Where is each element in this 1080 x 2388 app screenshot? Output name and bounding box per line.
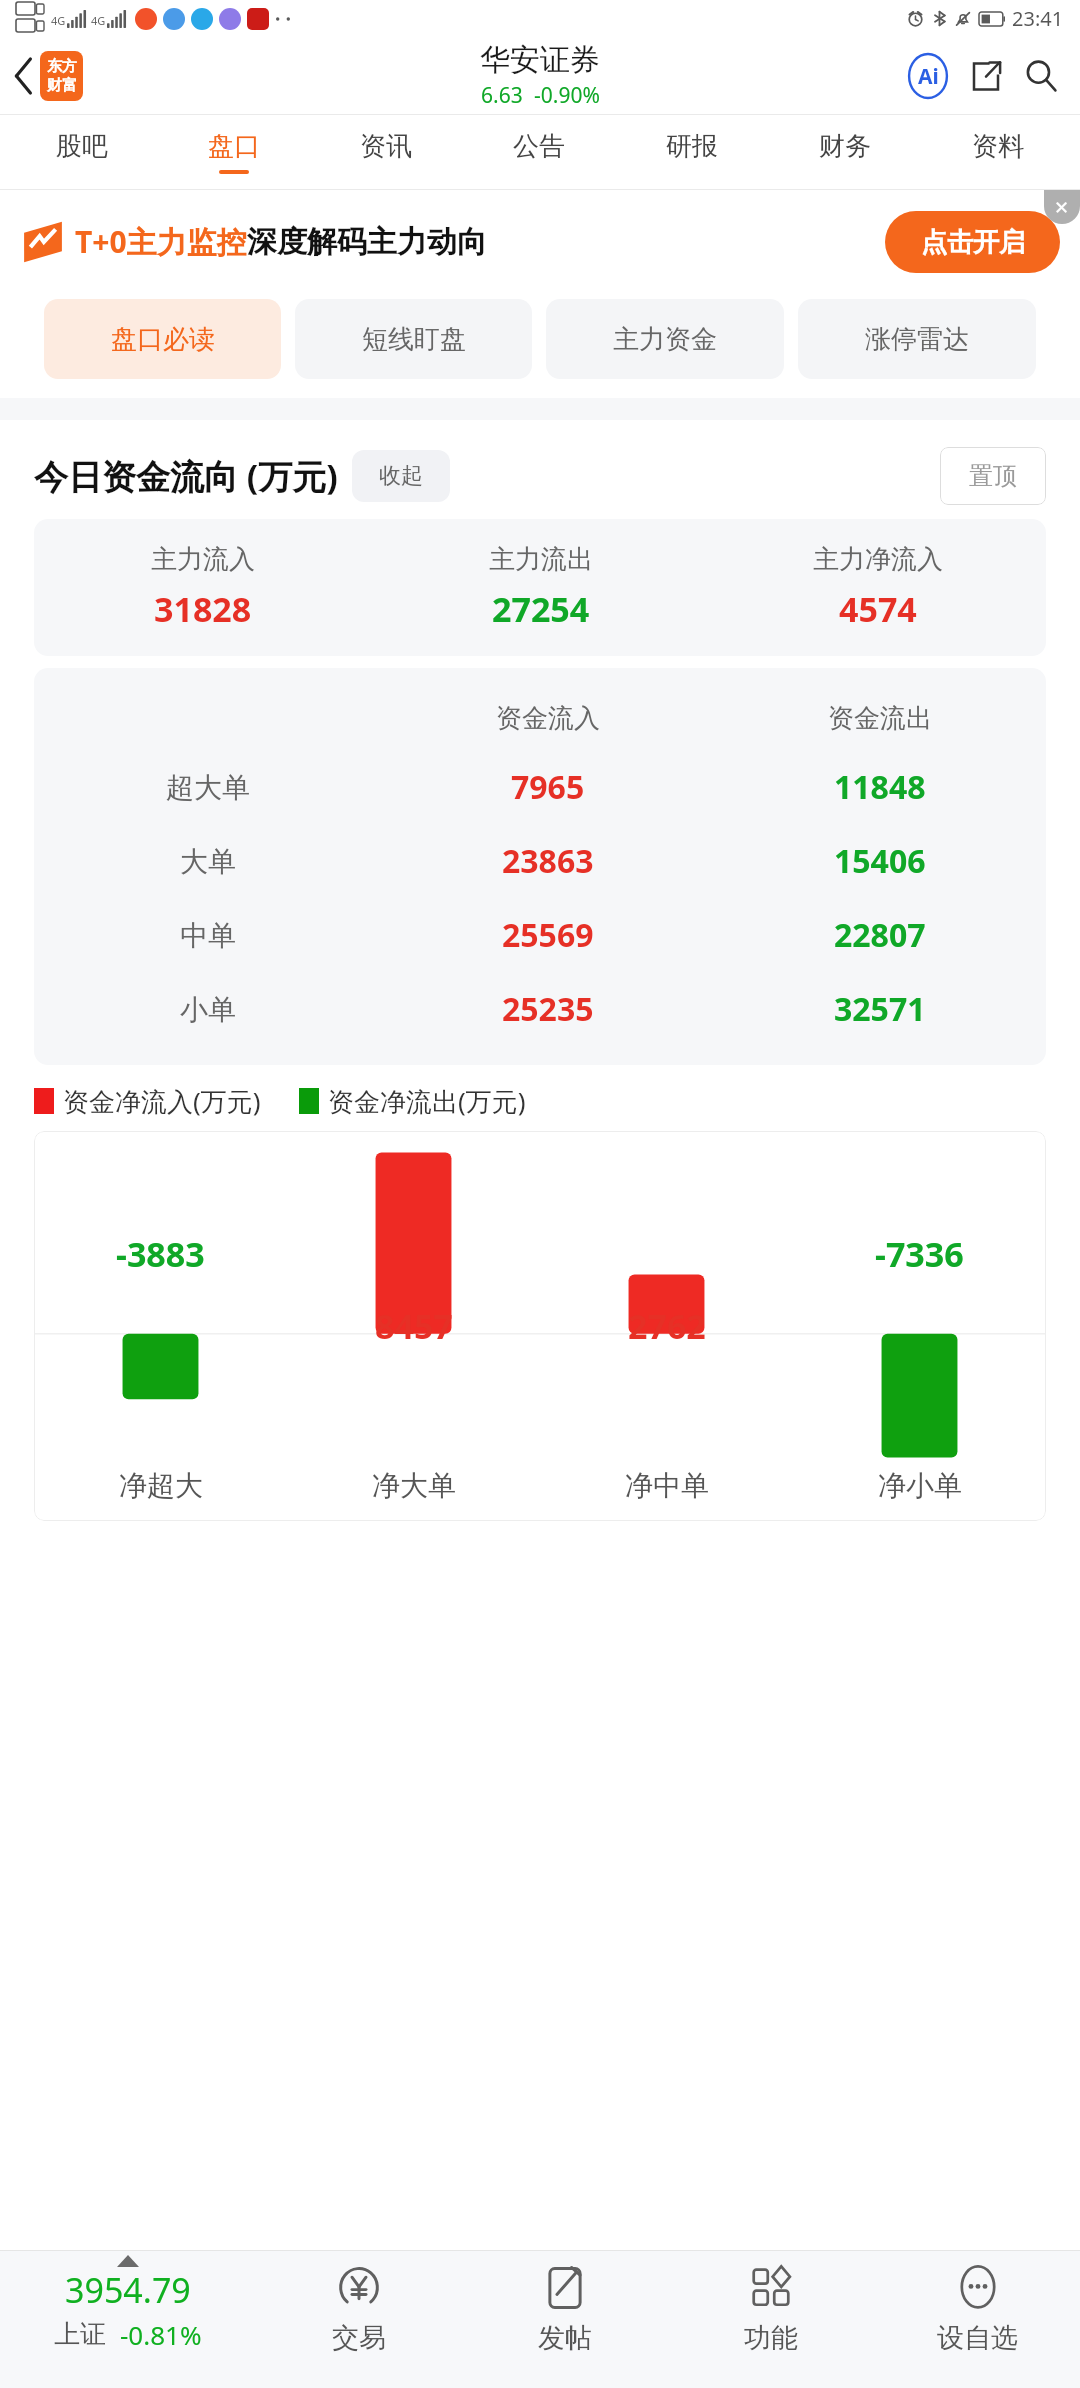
staticText: 财务	[819, 130, 871, 163]
button[interactable]: 财务	[768, 115, 921, 189]
staticText: ✕	[1054, 197, 1070, 218]
staticText: 东方	[47, 57, 77, 76]
staticText: 4G	[91, 13, 106, 28]
staticText: 25235	[502, 987, 594, 1031]
button[interactable]: 功能	[668, 2251, 874, 2388]
staticText: -3883	[116, 1231, 205, 1277]
staticText: 32571	[834, 987, 926, 1031]
staticText: 深度解码主力动向	[247, 223, 487, 261]
button[interactable]: AI assistant	[906, 54, 950, 98]
button[interactable]: 资讯	[310, 115, 462, 189]
button[interactable]: Search	[1020, 55, 1062, 97]
staticText: 资金净流出(万元)	[328, 1083, 526, 1119]
staticText: 公告	[513, 130, 565, 163]
staticText: -0.81%	[120, 2317, 202, 2352]
staticText: 盘口	[208, 130, 260, 163]
staticText: 发帖	[538, 2321, 592, 2355]
button[interactable]: 收起	[352, 450, 450, 502]
staticText: 31828	[154, 586, 252, 632]
staticText: 华安证券	[480, 41, 600, 79]
staticText: 中单	[180, 918, 236, 953]
button[interactable]: 短线盯盘	[295, 299, 532, 379]
staticText: 27254	[492, 586, 590, 632]
staticText: 盘口必读	[111, 323, 215, 356]
button[interactable]: 东方	[40, 51, 83, 101]
staticText: 资讯	[360, 130, 412, 163]
staticText: 上证	[54, 2318, 106, 2351]
staticText: 收起	[379, 462, 423, 490]
staticText: 功能	[744, 2321, 798, 2355]
button[interactable]: 主力资金	[546, 299, 784, 379]
staticText: 主力净流入	[813, 543, 943, 576]
staticText: 涨停雷达	[865, 323, 969, 356]
button[interactable]: Back	[0, 49, 40, 103]
staticText: 净大单	[372, 1468, 456, 1503]
staticText: 6.63	[481, 81, 523, 110]
button[interactable]: 资料	[921, 115, 1074, 189]
staticText: -0.90%	[534, 81, 600, 110]
staticText: 净中单	[625, 1468, 709, 1503]
staticText: 23863	[502, 839, 594, 883]
staticText: 今日资金流向 (万元)	[34, 453, 338, 499]
staticText: 财富	[47, 76, 77, 95]
staticText: 研报	[666, 130, 718, 163]
button[interactable]: 发帖	[462, 2251, 668, 2388]
button[interactable]: 股吧	[6, 115, 158, 189]
button[interactable]: 点击开启	[885, 211, 1060, 273]
staticText: 4G	[51, 13, 66, 28]
button[interactable]: 盘口	[158, 115, 310, 189]
staticText: 资金净流入(万元)	[63, 1083, 261, 1119]
staticText: 4574	[839, 586, 917, 632]
staticText: 净小单	[878, 1468, 962, 1503]
staticText: 主力流出	[489, 543, 593, 576]
staticText: 短线盯盘	[362, 323, 466, 356]
staticText: 资金流入	[496, 702, 600, 735]
staticText: 点击开启	[921, 226, 1025, 259]
staticText: 主力资金	[613, 323, 717, 356]
button[interactable]: 交易	[256, 2251, 462, 2388]
staticText: 8457	[375, 1303, 453, 1349]
staticText: 交易	[332, 2321, 386, 2355]
button[interactable]: 设自选	[874, 2251, 1080, 2388]
staticText: 净超大	[119, 1468, 203, 1503]
button[interactable]: 公告	[462, 115, 615, 189]
button[interactable]: 涨停雷达	[798, 299, 1036, 379]
button[interactable]: 盘口必读	[44, 299, 281, 379]
staticText: 超大单	[166, 770, 250, 805]
button[interactable]: 3954.79	[0, 2251, 256, 2388]
button[interactable]: Close ad	[1044, 190, 1080, 224]
staticText: 2762	[628, 1303, 706, 1349]
button[interactable]: 研报	[615, 115, 768, 189]
button[interactable]: Share	[966, 56, 1006, 96]
staticText: 大单	[180, 844, 236, 879]
staticText: 股吧	[56, 130, 108, 163]
staticText: Ai	[918, 62, 939, 91]
staticText: 置顶	[969, 461, 1017, 491]
staticText: 主力流入	[151, 543, 255, 576]
button[interactable]: 置顶	[940, 447, 1046, 505]
staticText: 25569	[502, 913, 594, 957]
staticText: 小单	[180, 992, 236, 1027]
staticText: -7336	[875, 1231, 964, 1277]
staticText: 3954.79	[65, 2267, 191, 2313]
staticText: 资料	[972, 130, 1024, 163]
staticText: 22807	[834, 913, 926, 957]
staticText: 11848	[834, 765, 926, 809]
staticText: 资金流出	[828, 702, 932, 735]
staticText: 7965	[511, 765, 585, 809]
staticText: T+0主力监控	[75, 221, 247, 262]
staticText: 23:41	[1012, 5, 1064, 32]
staticText: 15406	[834, 839, 926, 883]
staticText: 设自选	[937, 2321, 1018, 2355]
